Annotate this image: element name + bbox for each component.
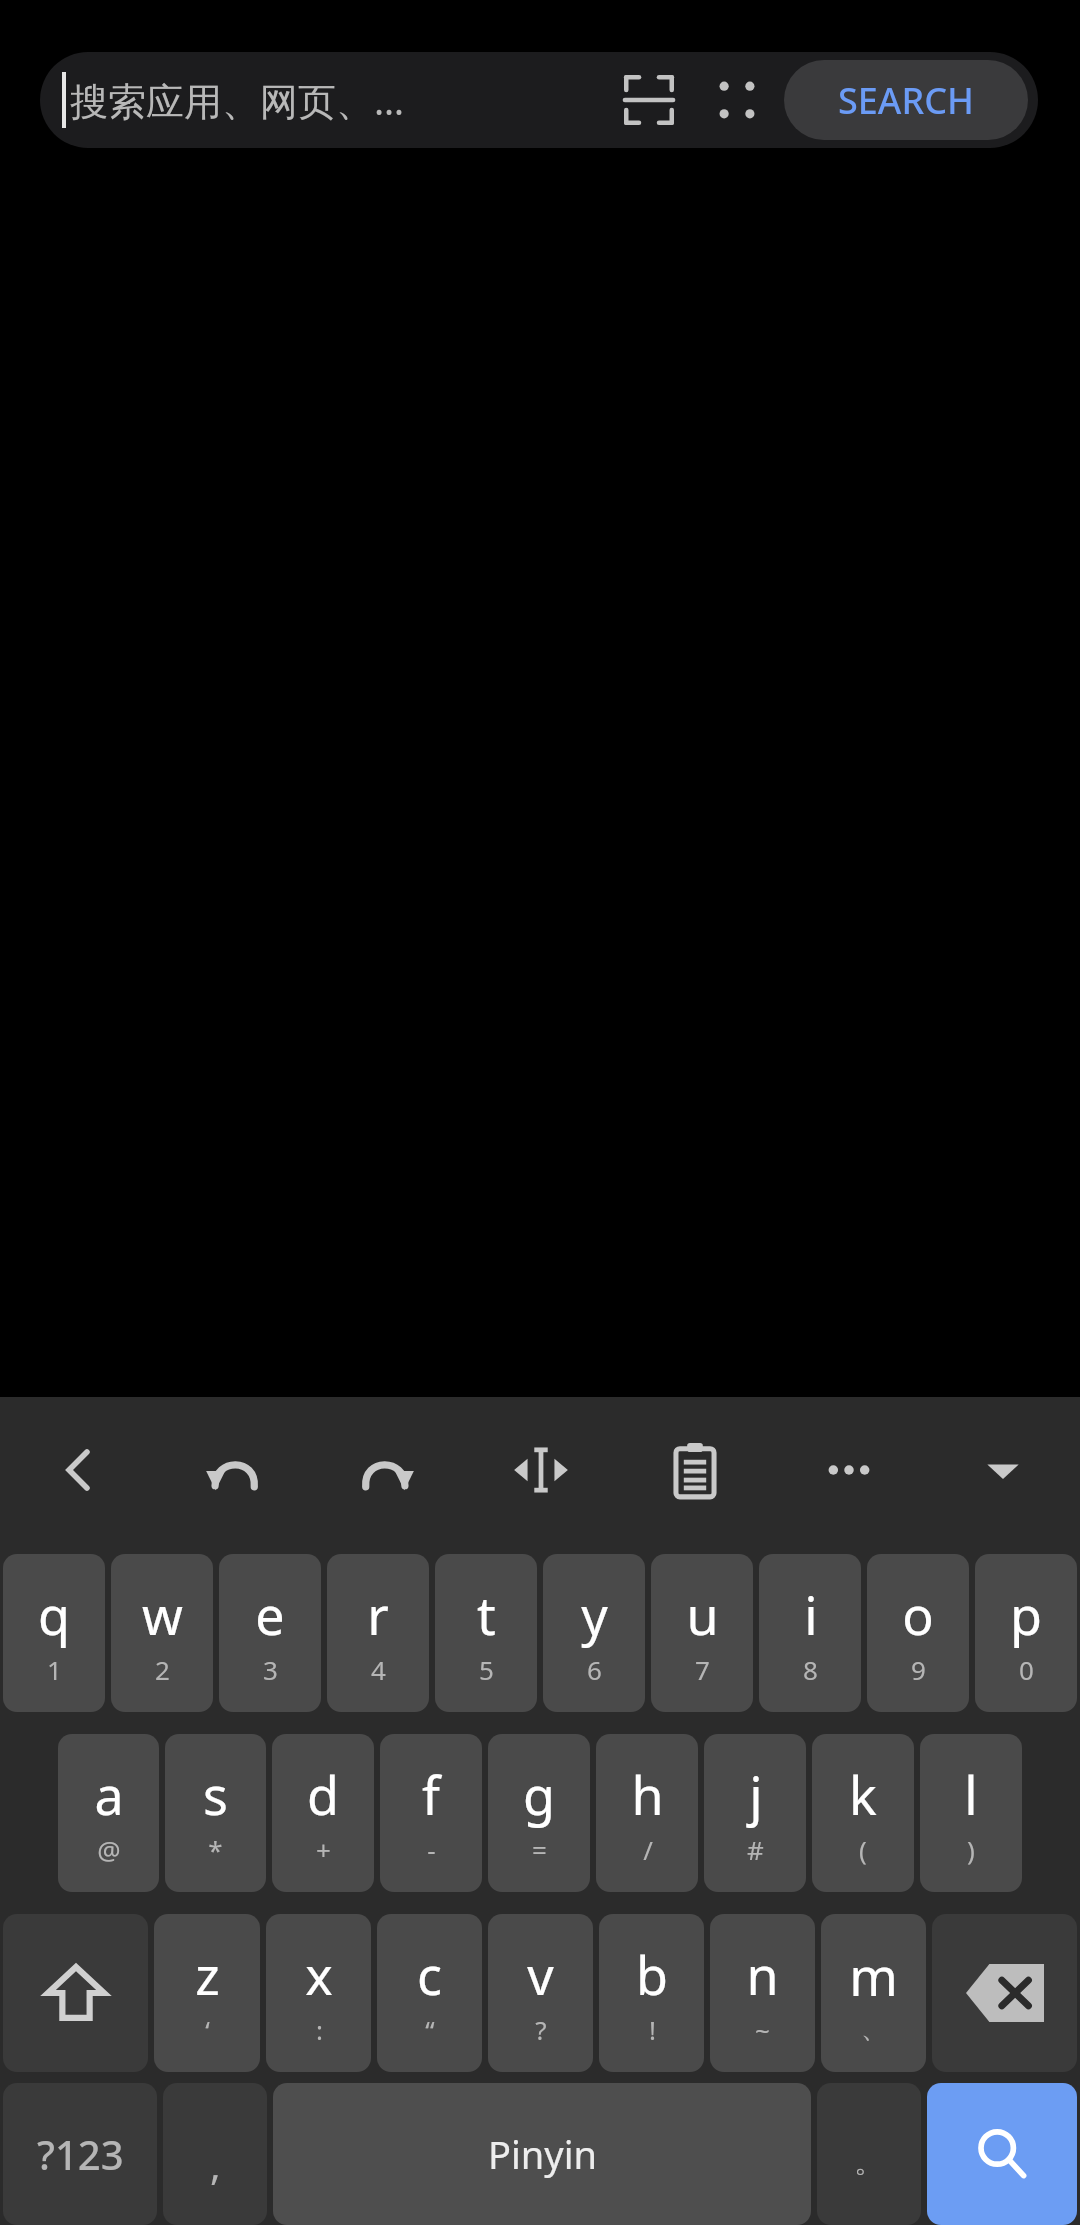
staticText: ! (649, 2012, 656, 2047)
button[interactable]: Select text (464, 1397, 618, 1543)
button[interactable]: s (165, 1734, 266, 1892)
staticText: SEARCH (838, 76, 974, 125)
staticText: 0 (1019, 1652, 1034, 1687)
staticText: - (427, 1832, 436, 1867)
button[interactable]: y (543, 1554, 645, 1712)
button[interactable]: Back (0, 1397, 155, 1543)
staticText: 搜索应用、网页、… (70, 74, 405, 126)
staticText: d (307, 1759, 339, 1830)
staticText: ) (967, 1832, 975, 1867)
staticText: * (208, 1832, 223, 1867)
button[interactable]: 搜索应用、网页、… (40, 52, 1038, 148)
button[interactable]: 。 (817, 2083, 921, 2225)
staticText: “ (425, 2012, 435, 2047)
button[interactable]: e (219, 1554, 321, 1712)
staticText: k (849, 1759, 877, 1830)
button[interactable]: o (867, 1554, 969, 1712)
staticText: h (631, 1759, 664, 1830)
button[interactable]: q (3, 1554, 105, 1712)
button[interactable]: Scan (608, 59, 690, 141)
staticText: s (203, 1759, 228, 1830)
staticText: g (523, 1759, 555, 1830)
staticText: l (964, 1759, 978, 1830)
button[interactable]: l (920, 1734, 1022, 1892)
button[interactable]: Undo (155, 1397, 310, 1543)
button[interactable]: d (272, 1734, 374, 1892)
staticText: + (316, 1832, 331, 1867)
staticText: 7 (695, 1652, 710, 1687)
staticText: 2 (155, 1652, 170, 1687)
staticText: r (367, 1579, 389, 1650)
staticText: , (210, 2137, 221, 2191)
staticText: 5 (479, 1652, 494, 1687)
staticText: f (422, 1759, 440, 1830)
button[interactable]: a (58, 1734, 159, 1892)
staticText: u (686, 1579, 719, 1650)
button[interactable]: r (327, 1554, 429, 1712)
staticText: ~ (755, 2012, 770, 2047)
button[interactable]: Backspace (932, 1914, 1077, 2072)
staticText: n (746, 1939, 779, 2010)
staticText: z (195, 1939, 220, 2010)
staticText: ? (535, 2012, 547, 2047)
button[interactable]: c (377, 1914, 482, 2072)
staticText: / (643, 1832, 653, 1867)
button[interactable]: p (975, 1554, 1077, 1712)
staticText: 。 (854, 2143, 884, 2181)
staticText: : (316, 2012, 323, 2047)
staticText: 、 (861, 2013, 887, 2046)
button[interactable]: i (759, 1554, 861, 1712)
staticText: ‘ (205, 2012, 210, 2047)
staticText: ?123 (37, 2127, 124, 2181)
staticText: # (747, 1832, 764, 1867)
button[interactable]: t (435, 1554, 537, 1712)
button[interactable]: k (812, 1734, 914, 1892)
staticText: ( (859, 1832, 867, 1867)
staticText: 4 (371, 1652, 386, 1687)
staticText: v (527, 1939, 554, 2010)
staticText: a (94, 1759, 124, 1830)
button[interactable]: v (488, 1914, 593, 2072)
button[interactable]: Hide keyboard (926, 1397, 1080, 1543)
button[interactable]: SEARCH (784, 60, 1028, 140)
staticText: 3 (263, 1652, 278, 1687)
button[interactable]: z (154, 1914, 260, 2072)
button[interactable]: u (651, 1554, 753, 1712)
staticText: b (636, 1939, 668, 2010)
button[interactable]: More options (772, 1397, 926, 1543)
button[interactable]: m (821, 1914, 926, 2072)
button[interactable]: Shift (3, 1914, 148, 2072)
staticText: w (142, 1579, 183, 1650)
staticText: 8 (803, 1652, 818, 1687)
button[interactable]: Search (927, 2083, 1077, 2225)
button[interactable]: f (380, 1734, 482, 1892)
staticText: t (477, 1579, 496, 1650)
staticText: o (902, 1579, 934, 1650)
staticText: i (804, 1579, 818, 1650)
staticText: 9 (911, 1652, 926, 1687)
button[interactable]: Clipboard (618, 1397, 772, 1543)
staticText: q (38, 1579, 70, 1650)
button[interactable]: ?123 (3, 2083, 157, 2225)
staticText: @ (97, 1832, 121, 1867)
staticText: x (305, 1939, 333, 2010)
staticText: e (255, 1579, 285, 1650)
button[interactable]: Lens (696, 59, 778, 141)
staticText: 1 (47, 1652, 62, 1687)
button[interactable]: Redo (310, 1397, 464, 1543)
button[interactable]: Pinyin (273, 2083, 811, 2225)
staticText: p (1010, 1579, 1042, 1650)
button[interactable]: x (266, 1914, 371, 2072)
button[interactable]: w (111, 1554, 213, 1712)
button[interactable]: n (710, 1914, 815, 2072)
staticText: = (532, 1832, 547, 1867)
staticText: m (849, 1940, 898, 2011)
button[interactable]: b (599, 1914, 704, 2072)
staticText: j (749, 1759, 763, 1830)
staticText: c (417, 1939, 442, 2010)
button[interactable]: , (163, 2083, 267, 2225)
button[interactable]: j (704, 1734, 806, 1892)
button[interactable]: g (488, 1734, 590, 1892)
staticText: 6 (587, 1652, 602, 1687)
button[interactable]: h (596, 1734, 698, 1892)
